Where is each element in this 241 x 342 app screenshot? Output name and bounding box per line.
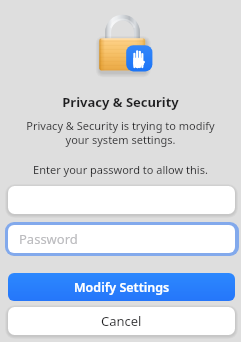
button[interactable]: Modify Settings: [8, 273, 235, 301]
staticText: Cancel: [101, 312, 142, 330]
staticText: Modify Settings: [74, 279, 170, 296]
staticText: Privacy & Security is trying to modify y…: [0, 118, 241, 148]
staticText: Password: [19, 230, 78, 248]
staticText: Enter your password to allow this.: [0, 162, 241, 177]
staticText: Privacy & Security: [0, 93, 241, 111]
button[interactable]: User name: [8, 186, 235, 214]
other: Privacy and Security lock: [96, 10, 156, 74]
button[interactable]: Cancel: [8, 307, 235, 335]
button[interactable]: Password: [5, 222, 239, 256]
